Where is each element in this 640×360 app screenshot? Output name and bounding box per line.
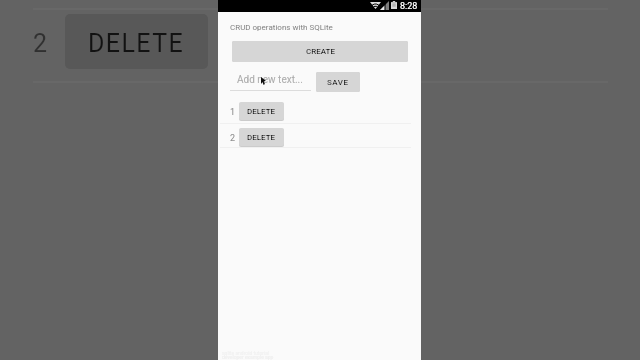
staticText: CREATE [306, 47, 335, 56]
staticText: developer example app [222, 354, 274, 360]
button[interactable]: SAVE [316, 72, 360, 92]
staticText: SAVE [327, 78, 349, 87]
button[interactable]: DELETE [239, 102, 284, 120]
staticText: sqlite android tutorial [222, 350, 270, 356]
other: Cellular signal [380, 1, 389, 10]
button[interactable]: 1 [218, 100, 421, 123]
other: Wi-Fi signal [370, 2, 381, 9]
staticText: 2 [33, 29, 48, 58]
staticText: Add new text... [237, 74, 303, 86]
staticText: DELETE [88, 29, 185, 58]
staticText: DELETE [247, 107, 276, 116]
button[interactable]: 2 [218, 126, 421, 149]
button[interactable]: DELETE [239, 128, 284, 146]
staticText: 2 [230, 133, 236, 144]
other: Battery [391, 1, 397, 9]
staticText: CRUD operations with SQLite [230, 23, 333, 32]
button[interactable]: CREATE [232, 41, 408, 62]
staticText: 8:28 [400, 1, 418, 12]
staticText: 1 [230, 107, 236, 118]
staticText: DELETE [247, 133, 276, 142]
